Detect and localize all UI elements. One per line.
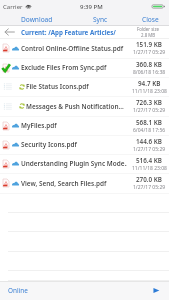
staticText: File Status Icons.pdf [26, 82, 127, 91]
staticText: 270.0 KB [136, 175, 163, 184]
staticText: 360.8 KB [136, 60, 163, 69]
staticText: Security Icons.pdf [21, 140, 127, 149]
staticText: 11/11/18 23:08 [132, 165, 167, 172]
staticText: MyFiles.pdf [21, 121, 127, 130]
staticText: 516.4 KB [136, 156, 163, 165]
staticText: Exclude Files From Sync.pdf [21, 63, 127, 72]
button[interactable]: Exclude Files From Sync.pdf [0, 59, 169, 78]
staticText: 94.7 KB [138, 79, 161, 88]
button[interactable]: Online [8, 286, 28, 295]
staticText: 1/27/17 05:29 [133, 107, 166, 114]
button[interactable]: Security Icons.pdf [0, 136, 169, 155]
staticText: Download [21, 15, 53, 24]
staticText: 144.6 KB [136, 137, 163, 146]
button[interactable]: Understanding Plugin Sync Mode... [0, 155, 169, 174]
staticText: 151.9 KB [136, 40, 163, 49]
staticText: Messages & Push Notification... [26, 102, 127, 111]
button[interactable]: File Status Icons.pdf [0, 78, 169, 97]
button[interactable]: Download [21, 13, 53, 25]
staticText: Sync [93, 15, 108, 24]
button[interactable]: Control Online-Offline Status.pdf [0, 39, 169, 59]
staticText: Online [8, 286, 28, 295]
staticText: 11/11/18 23:08 [132, 88, 167, 95]
staticText: Control Online-Offline Status.pdf [21, 44, 127, 53]
button[interactable]: MyFiles.pdf [0, 117, 169, 136]
staticText: Folder size [137, 26, 159, 32]
staticText: 6/04/18 17:56 [133, 127, 166, 134]
staticText: 2.8 MB [141, 32, 156, 38]
staticText: 9:39 PM [80, 3, 103, 11]
button[interactable]: View, Send, Search Files.pdf [0, 174, 169, 194]
button[interactable]: Close [142, 13, 159, 25]
staticText: Understanding Plugin Sync Mode... [21, 159, 127, 168]
button[interactable]: Sync [93, 13, 108, 25]
button[interactable]: Back [0, 26, 18, 38]
staticText: 8/06/18 16:38 [133, 69, 166, 76]
staticText: 1/27/17 05:29 [133, 49, 166, 56]
staticText: 1/27/17 05:29 [133, 184, 166, 191]
staticText: 568.1 KB [136, 118, 163, 127]
button[interactable]: Messages & Push Notification... [0, 97, 169, 117]
staticText: 1/27/17 05:29 [133, 146, 166, 153]
staticText: Carrier [3, 3, 23, 11]
staticText: View, Send, Search Files.pdf [21, 179, 127, 188]
button[interactable]: Go [149, 284, 162, 297]
staticText: Close [142, 15, 159, 24]
staticText: Current: /App Feature Articles/ [21, 28, 116, 36]
staticText: 726.3 KB [136, 98, 163, 107]
